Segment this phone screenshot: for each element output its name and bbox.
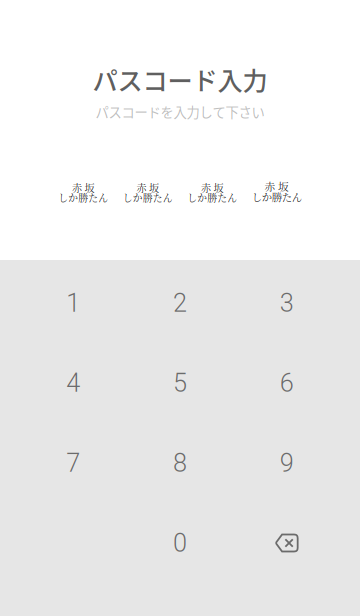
staticText: しか勝たん <box>252 189 302 204</box>
button[interactable]: 8 <box>127 423 233 503</box>
staticText: 赤 <box>201 180 211 195</box>
staticText: しか勝たん <box>58 190 108 204</box>
button[interactable]: 4 <box>20 343 127 423</box>
button[interactable]: 6 <box>233 343 340 423</box>
staticText: 6 <box>280 368 294 398</box>
button[interactable]: 5 <box>127 343 233 423</box>
staticText: 7 <box>66 448 80 478</box>
staticText: 9 <box>280 448 294 478</box>
staticText: 坂 <box>84 180 94 195</box>
staticText: 5 <box>173 368 187 398</box>
staticText: 坂 <box>278 178 289 194</box>
staticText: 赤 <box>72 180 82 195</box>
button[interactable]: 9 <box>233 423 340 503</box>
staticText: パスコードを入力して下さい <box>95 102 264 121</box>
staticText: 4 <box>66 368 80 398</box>
staticText: 0 <box>173 528 187 558</box>
staticText: 赤 <box>264 178 275 194</box>
staticText: 3 <box>280 288 294 318</box>
button[interactable]: Delete <box>233 503 340 583</box>
button[interactable]: 1 <box>20 263 127 343</box>
staticText: 1 <box>66 288 80 318</box>
button[interactable]: 2 <box>127 263 233 343</box>
staticText: 坂 <box>213 180 223 195</box>
staticText: しか勝たん <box>123 190 173 204</box>
button[interactable]: 7 <box>20 423 127 503</box>
button[interactable]: 3 <box>233 263 340 343</box>
staticText: 坂 <box>149 180 159 195</box>
staticText: パスコード入力 <box>92 61 267 97</box>
staticText: 8 <box>173 448 187 478</box>
button[interactable]: 0 <box>127 503 233 583</box>
staticText: 2 <box>173 288 187 318</box>
staticText: しか勝たん <box>187 190 237 204</box>
staticText: 赤 <box>137 180 147 195</box>
